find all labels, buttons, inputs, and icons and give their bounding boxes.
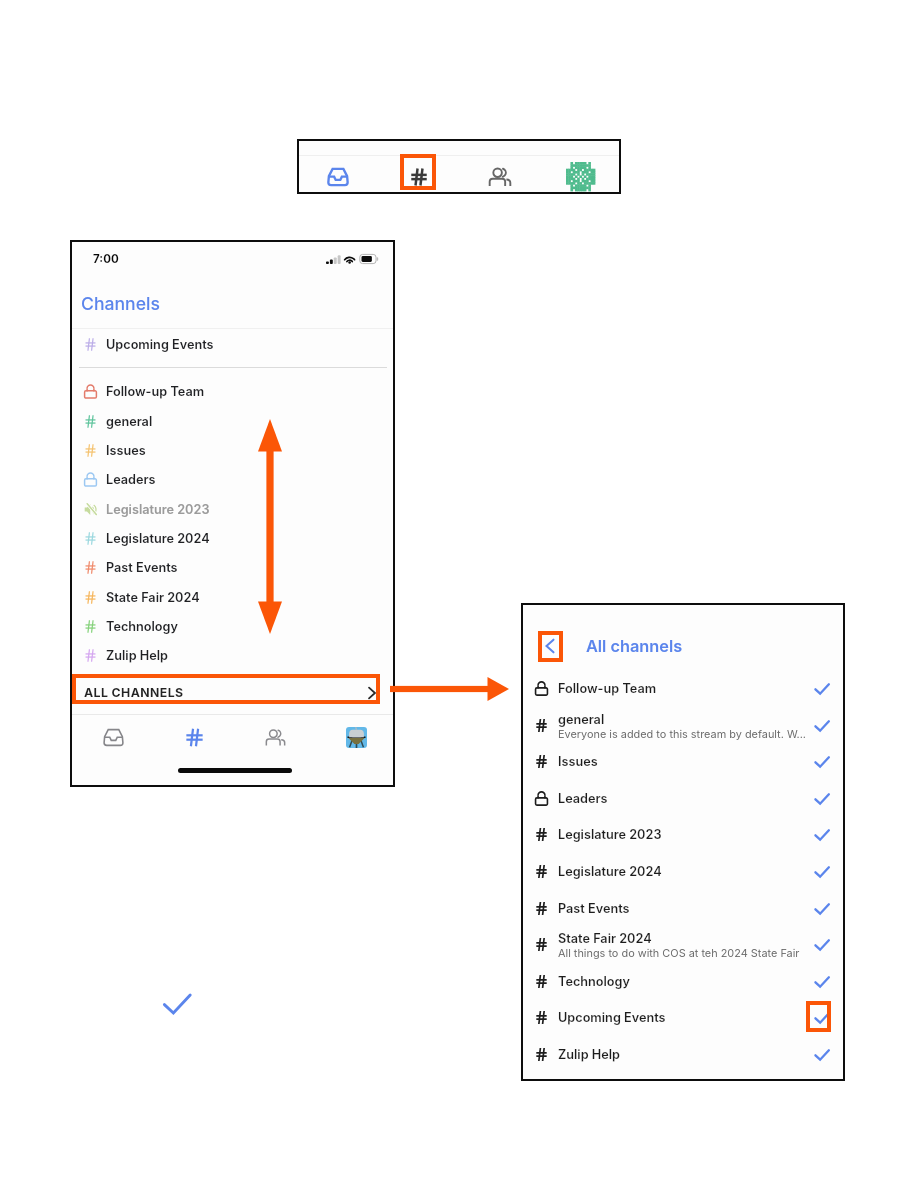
staticText: Everyone is added to this stream by defa… [558, 727, 806, 740]
button[interactable]: Legislature 2024 [70, 524, 395, 553]
button[interactable]: State Fair 2024 [70, 583, 395, 612]
staticText: Upcoming Events [558, 1010, 666, 1025]
staticText: 7:00 [93, 252, 119, 266]
staticText: State Fair 2024 [106, 590, 200, 605]
button[interactable]: Follow-up Team [70, 377, 395, 406]
staticText: All channels [586, 636, 683, 656]
button[interactable]: Inbox [297, 149, 378, 204]
button[interactable]: Direct messages [459, 149, 540, 204]
button[interactable]: Issues [521, 743, 845, 780]
staticText: Upcoming Events [106, 337, 214, 352]
staticText: Channels [81, 293, 160, 314]
button[interactable]: Zulip Help [521, 1036, 845, 1073]
button[interactable]: Leaders [70, 465, 395, 494]
button[interactable]: Legislature 2024 [521, 853, 845, 890]
staticText: Follow-up Team [106, 384, 205, 399]
staticText: Technology [106, 619, 178, 634]
button[interactable]: ALL CHANNELS [70, 678, 395, 707]
staticText: Leaders [106, 472, 156, 487]
button[interactable]: Zulip Help [70, 641, 395, 670]
staticText: general [106, 414, 153, 429]
staticText: Legislature 2024 [106, 531, 210, 546]
button[interactable]: Technology [521, 963, 845, 1000]
staticText: Leaders [558, 791, 608, 806]
button[interactable]: Issues [70, 436, 395, 465]
staticText: Past Events [558, 901, 630, 916]
button[interactable]: Profile [316, 719, 397, 755]
button[interactable]: Technology [70, 612, 395, 641]
button[interactable]: Direct messages [235, 719, 316, 755]
staticText: Legislature 2024 [558, 864, 662, 879]
button[interactable]: Legislature 2023 [70, 495, 395, 524]
staticText: Issues [106, 443, 146, 458]
button[interactable]: Upcoming Events [521, 999, 845, 1036]
staticText: Issues [558, 754, 598, 769]
staticText: All things to do with COS at teh 2024 St… [558, 946, 800, 959]
button[interactable]: Channels [378, 149, 459, 204]
button[interactable]: Back [538, 634, 562, 658]
staticText: Follow-up Team [558, 681, 657, 696]
button[interactable]: Past Events [70, 553, 395, 582]
staticText: State Fair 2024 [558, 931, 652, 946]
button[interactable]: Channels [154, 719, 235, 755]
staticText: Past Events [106, 560, 178, 575]
button[interactable]: Follow-up Team [521, 670, 845, 707]
staticText: ALL CHANNELS [84, 685, 184, 700]
button[interactable]: State Fair 2024 [521, 926, 845, 963]
button[interactable]: Past Events [521, 890, 845, 927]
button[interactable]: Upcoming Events [70, 330, 395, 359]
button[interactable]: Profile [540, 149, 621, 204]
staticText: Zulip Help [106, 648, 169, 663]
button[interactable]: general [70, 407, 395, 436]
staticText: Zulip Help [558, 1047, 621, 1062]
staticText: Legislature 2023 [558, 827, 662, 842]
button[interactable]: Inbox [72, 719, 154, 755]
button[interactable]: Leaders [521, 780, 845, 817]
button[interactable]: Legislature 2023 [521, 816, 845, 853]
button[interactable]: general [521, 707, 845, 744]
staticText: general [558, 712, 605, 727]
staticText: Technology [558, 974, 630, 989]
staticText: Legislature 2023 [106, 502, 210, 517]
